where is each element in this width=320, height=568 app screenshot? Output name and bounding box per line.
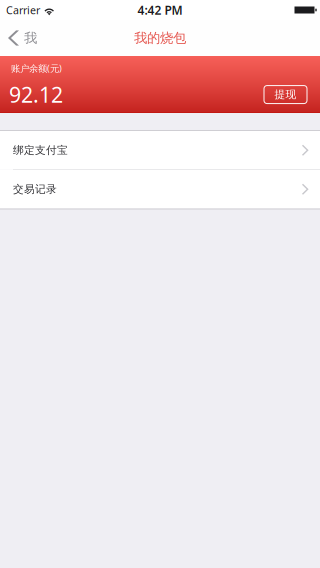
staticText: 92.12	[9, 80, 63, 109]
staticText: 交易记录	[13, 183, 57, 196]
staticText: Carrier	[6, 3, 40, 17]
staticText: 4:42 PM	[137, 2, 182, 18]
button[interactable]: 绑定支付宝	[0, 131, 320, 169]
staticText: 我的烧包	[134, 30, 186, 46]
staticText: 提现	[274, 88, 296, 101]
staticText: 绑定支付宝	[13, 144, 68, 157]
button[interactable]: 提现	[263, 85, 308, 105]
staticText: 我	[24, 30, 37, 46]
staticText: 账户余额(元)	[11, 62, 62, 74]
button[interactable]: 交易记录	[0, 170, 320, 208]
button[interactable]: 我	[0, 20, 49, 56]
